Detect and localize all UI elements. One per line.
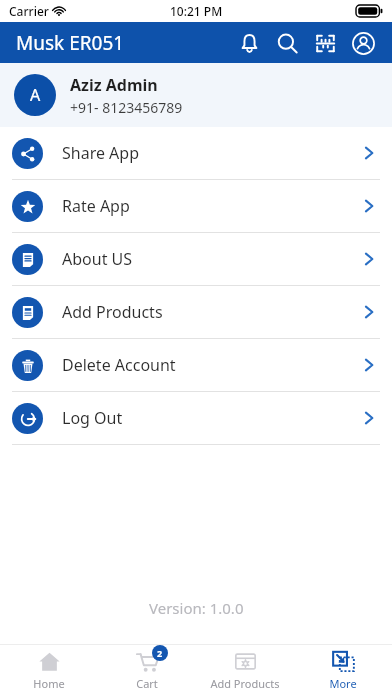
staticText: Log Out: [62, 407, 362, 429]
staticText: Add Products: [210, 676, 280, 691]
staticText: Home: [33, 676, 65, 691]
button[interactable]: Scan: [306, 24, 344, 62]
button[interactable]: Log Out: [0, 392, 392, 445]
button[interactable]: Add Products: [0, 286, 392, 339]
button[interactable]: Home: [0, 644, 98, 696]
staticText: Cart: [136, 676, 158, 691]
staticText: 2: [157, 647, 163, 659]
staticText: 10:21 PM: [170, 3, 223, 19]
staticText: Carrier: [9, 3, 49, 19]
button[interactable]: Add Products: [196, 644, 294, 696]
staticText: More: [329, 676, 357, 691]
button[interactable]: About US: [0, 233, 392, 286]
button[interactable]: A: [0, 63, 392, 127]
staticText: Add Products: [62, 301, 362, 323]
button[interactable]: More: [294, 644, 392, 696]
button[interactable]: Share App: [0, 127, 392, 180]
button[interactable]: Rate App: [0, 180, 392, 233]
staticText: Aziz Admin: [70, 74, 158, 96]
button[interactable]: 2: [98, 644, 196, 696]
staticText: Musk ER051: [16, 30, 125, 56]
staticText: Rate App: [62, 195, 362, 217]
staticText: A: [30, 84, 41, 106]
staticText: About US: [62, 248, 362, 270]
staticText: Version: 1.0.0: [149, 598, 244, 618]
staticText: Delete Account: [62, 354, 362, 376]
button[interactable]: Profile: [344, 24, 382, 62]
button[interactable]: Notifications: [230, 24, 268, 62]
button[interactable]: Search: [268, 24, 306, 62]
button[interactable]: Delete Account: [0, 339, 392, 392]
staticText: Share App: [62, 142, 362, 164]
staticText: +91- 8123456789: [70, 98, 183, 117]
